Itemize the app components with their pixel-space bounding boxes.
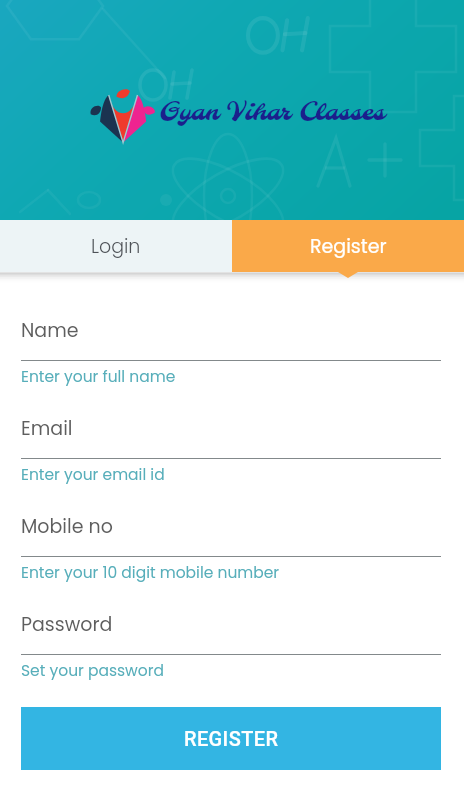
staticText: Login [91,233,141,260]
staticText: Enter your email id [21,464,165,486]
staticText: Email [21,415,73,442]
staticText: Password [21,611,113,638]
staticText: Enter your full name [21,366,176,388]
staticText: Name [21,317,79,344]
staticText: Set your password [21,660,165,682]
staticText: Enter your 10 digit mobile number [21,562,280,584]
staticText: Mobile no [21,513,113,540]
staticText: REGISTER [184,727,279,750]
staticText: Gyan Vihar Classes [159,98,385,128]
button[interactable]: Login [0,220,232,272]
button[interactable]: Register [232,220,464,272]
button[interactable]: REGISTER [21,707,441,770]
staticText: Register [310,233,387,260]
